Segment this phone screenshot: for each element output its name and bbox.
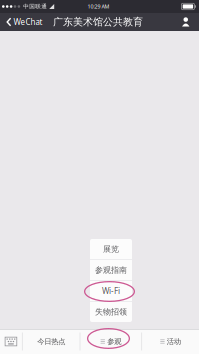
staticText: 中国联通 xyxy=(23,3,47,10)
button[interactable]: 参观 xyxy=(80,329,141,354)
staticText: 参观 xyxy=(107,337,121,346)
staticText: 今日热点 xyxy=(37,337,65,346)
button[interactable]: Wi-Fi xyxy=(90,281,132,301)
button[interactable]: 今日热点 xyxy=(23,329,80,354)
button[interactable]: 失物招领 xyxy=(90,302,132,322)
button[interactable]: Keyboard xyxy=(0,329,22,354)
staticText: 失物招领 xyxy=(95,307,127,317)
button[interactable]: Contact card xyxy=(174,13,199,31)
staticText: 活动 xyxy=(167,337,181,346)
staticText: WeChat xyxy=(14,17,43,27)
staticText: 展览 xyxy=(103,244,119,254)
button[interactable]: 参观指南 xyxy=(90,260,132,280)
button[interactable]: 活动 xyxy=(142,329,199,354)
button[interactable]: 展览 xyxy=(90,239,132,259)
staticText: Wi-Fi xyxy=(102,285,120,296)
staticText: 参观指南 xyxy=(95,265,127,275)
staticText: 广东美术馆公共教育 xyxy=(53,16,143,28)
button[interactable]: WeChat xyxy=(0,13,48,31)
staticText: 10:29 AM xyxy=(87,3,109,10)
